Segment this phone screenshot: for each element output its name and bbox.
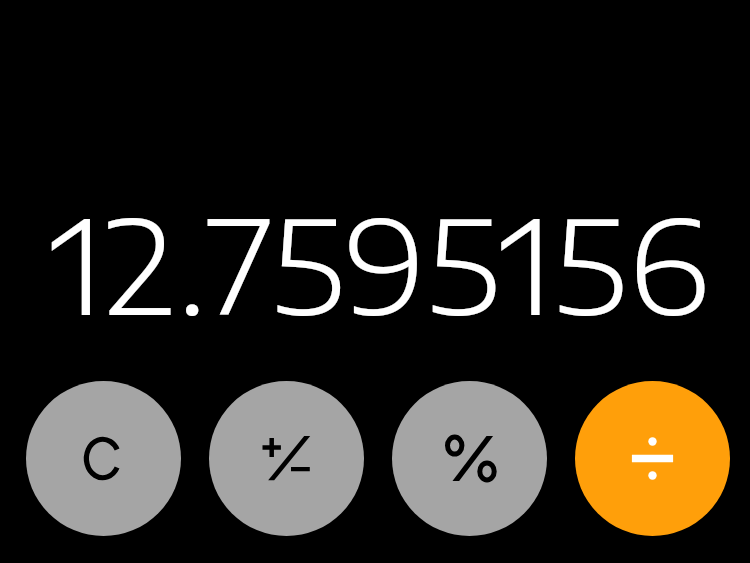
button[interactable]: Divide: [575, 381, 730, 536]
staticText: 12.7595156: [50, 182, 711, 343]
button[interactable]: Percent: [392, 381, 547, 536]
button[interactable]: Clear: [26, 381, 181, 536]
button[interactable]: Toggle sign: [209, 381, 364, 536]
